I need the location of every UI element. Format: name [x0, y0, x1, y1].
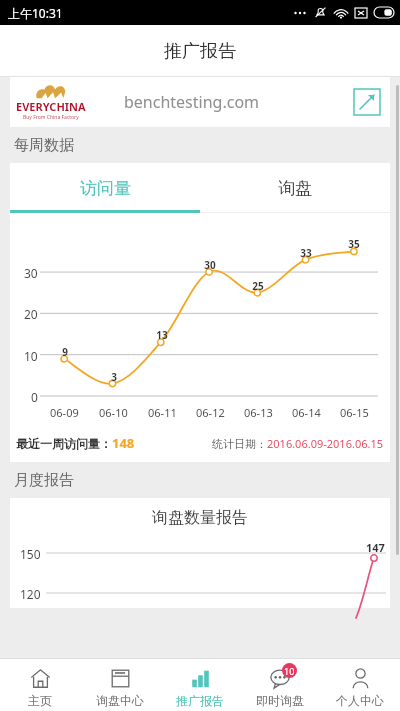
staticText: 9 [62, 345, 68, 359]
staticText: 120 [20, 586, 41, 602]
button[interactable]: 10 [240, 658, 320, 711]
staticText: 即时询盘 [256, 693, 304, 708]
staticText: 30 [204, 258, 216, 272]
staticText: Buy From China Factory [23, 114, 79, 121]
staticText: 35 [348, 237, 360, 251]
staticText: 06-11 [148, 405, 177, 420]
staticText: 13 [156, 328, 168, 342]
staticText: 统计日期： [212, 437, 267, 451]
staticText: 访问量 [80, 178, 131, 199]
staticText: 148 [112, 434, 135, 452]
staticText: 推广报告 [176, 693, 224, 708]
button[interactable]: 推广报告 [160, 658, 240, 711]
button[interactable]: 询盘 [200, 163, 390, 213]
staticText: 30 [24, 265, 38, 281]
staticText: 推广报告 [164, 40, 236, 63]
staticText: 06-12 [196, 405, 225, 420]
button[interactable]: EVERYCHINA [10, 77, 390, 127]
staticText: 33 [300, 246, 312, 260]
staticText: 询盘中心 [96, 693, 144, 708]
button[interactable]: 访问量 [10, 163, 200, 213]
staticText: 06-14 [292, 405, 321, 420]
button[interactable]: 主页 [0, 658, 80, 711]
staticText: 最近一周访问量： [16, 436, 112, 451]
staticText: 询盘数量报告 [152, 508, 248, 528]
staticText: 20 [24, 306, 38, 322]
staticText: 06-15 [340, 405, 369, 420]
staticText: 10 [24, 348, 38, 364]
staticText: 06-10 [99, 405, 128, 420]
button[interactable]: 个人中心 [320, 658, 400, 711]
staticText: 150 [20, 546, 41, 562]
staticText: benchtesting.com [124, 91, 260, 113]
staticText: 主页 [28, 693, 52, 708]
button[interactable]: 询盘中心 [80, 658, 160, 711]
staticText: 上午10:31 [8, 5, 63, 21]
staticText: 3 [111, 370, 117, 384]
staticText: 询盘 [278, 178, 312, 199]
staticText: 月度报告 [14, 471, 74, 490]
staticText: 每周数据 [14, 136, 74, 155]
button[interactable]: Open website [354, 89, 380, 115]
staticText: 10 [284, 665, 295, 677]
staticText: 06-13 [244, 405, 273, 420]
staticText: 2016.06.09-2016.06.15 [267, 436, 384, 451]
staticText: 0 [31, 389, 38, 405]
staticText: 25 [252, 279, 264, 293]
staticText: EVERYCHINA [16, 99, 86, 114]
staticText: 06-09 [50, 405, 79, 420]
staticText: 个人中心 [336, 693, 384, 708]
staticText: 147 [366, 540, 385, 555]
